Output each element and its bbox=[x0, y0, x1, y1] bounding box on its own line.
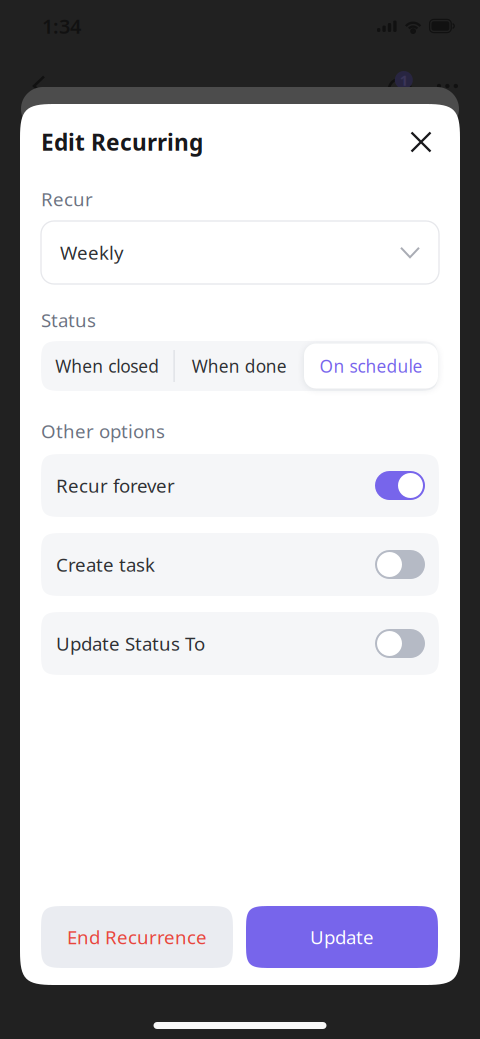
button[interactable]: Update Status To bbox=[41, 612, 439, 675]
staticText: 1:34 bbox=[42, 13, 81, 39]
staticText: On schedule bbox=[319, 354, 422, 377]
button[interactable]: On schedule bbox=[304, 343, 438, 388]
button[interactable]: Create task bbox=[41, 533, 439, 596]
staticText: End Recurrence bbox=[67, 925, 207, 949]
staticText: Recur bbox=[41, 187, 93, 211]
staticText: Update Status To bbox=[56, 631, 205, 656]
button[interactable]: When closed bbox=[41, 341, 173, 391]
button[interactable]: End Recurrence bbox=[41, 906, 233, 968]
staticText: 1 bbox=[400, 70, 408, 90]
button[interactable]: Recur forever bbox=[41, 454, 439, 517]
staticText: Recur forever bbox=[56, 473, 175, 498]
button[interactable]: Update bbox=[246, 906, 438, 968]
staticText: Other options bbox=[41, 419, 165, 443]
staticText: When done bbox=[192, 354, 287, 377]
staticText: Edit Recurring bbox=[41, 127, 203, 157]
staticText: Status bbox=[41, 308, 96, 332]
staticText: Weekly bbox=[60, 240, 124, 265]
button[interactable]: Weekly bbox=[41, 221, 439, 284]
button[interactable]: When done bbox=[175, 341, 304, 391]
staticText: Update bbox=[310, 925, 374, 949]
staticText: Create task bbox=[56, 552, 155, 577]
button[interactable]: Close bbox=[403, 124, 439, 160]
staticText: When closed bbox=[55, 354, 159, 377]
